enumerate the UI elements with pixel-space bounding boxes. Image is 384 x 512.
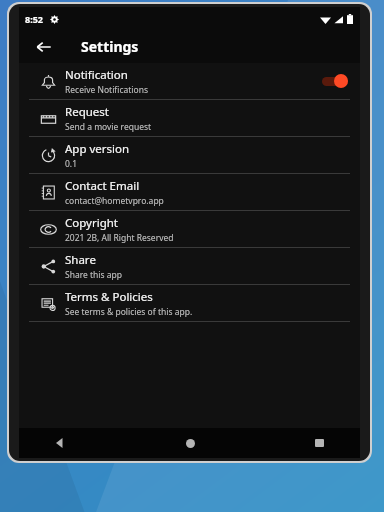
button[interactable]: Home <box>177 430 203 456</box>
button[interactable]: Contact Email <box>19 174 360 210</box>
staticText: Share this app <box>65 269 123 281</box>
staticText: Receive Notifications <box>65 84 149 96</box>
button[interactable]: Request <box>19 100 360 136</box>
button[interactable]: Notification <box>19 63 360 99</box>
button[interactable]: Back <box>31 34 57 60</box>
staticText: contact@hometvpro.app <box>65 195 164 207</box>
button[interactable]: Recent apps <box>306 430 332 456</box>
button[interactable]: Share <box>19 248 360 284</box>
staticText: Share <box>65 252 96 268</box>
staticText: App version <box>65 141 130 157</box>
button[interactable]: Back <box>47 430 73 456</box>
button[interactable]: Notification toggle <box>316 72 348 90</box>
staticText: Contact Email <box>65 178 140 194</box>
button[interactable]: Terms & Policies <box>19 285 360 321</box>
button[interactable]: App version <box>19 137 360 173</box>
staticText: Send a movie request <box>65 121 152 133</box>
staticText: 2021 2B, All Right Reserved <box>65 232 174 244</box>
staticText: Terms & Policies <box>65 289 153 305</box>
staticText: Notification <box>65 67 128 83</box>
staticText: 0.1 <box>65 158 78 170</box>
staticText: Copyright <box>65 215 118 231</box>
staticText: Settings <box>81 37 139 56</box>
staticText: See terms & policies of this app. <box>65 306 193 318</box>
staticText: 8:52 <box>25 13 43 25</box>
button[interactable]: Copyright <box>19 211 360 247</box>
staticText: Request <box>65 104 109 120</box>
